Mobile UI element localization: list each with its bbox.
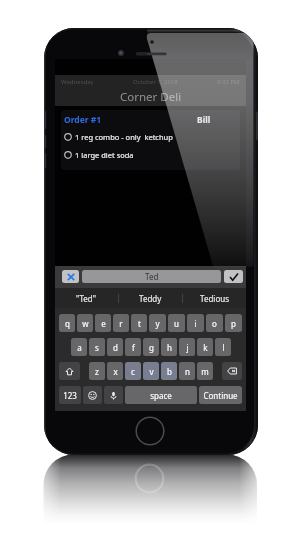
- staticText: q: [65, 318, 70, 329]
- staticText: c: [131, 366, 135, 377]
- button[interactable]: u: [168, 314, 185, 332]
- button[interactable]: c: [125, 362, 141, 380]
- staticText: t: [138, 318, 141, 329]
- staticText: "Ted": [76, 293, 97, 304]
- button[interactable]: 123: [59, 386, 81, 404]
- button[interactable]: p: [225, 314, 242, 332]
- staticText: o: [212, 318, 217, 329]
- staticText: 1 large diet soda: [75, 150, 134, 160]
- staticText: 123: [63, 390, 77, 401]
- button[interactable]: v: [143, 362, 159, 380]
- staticText: i: [194, 318, 197, 329]
- button[interactable]: l: [215, 338, 231, 356]
- button[interactable]: n: [179, 362, 195, 380]
- button[interactable]: f: [125, 338, 141, 356]
- staticText: 9:32 PM: [217, 78, 240, 86]
- button[interactable]: Continue: [199, 386, 242, 404]
- button[interactable]: b: [161, 362, 177, 380]
- staticText: Wednesday: [61, 78, 94, 86]
- staticText: Tedious: [200, 293, 229, 304]
- button[interactable]: e: [95, 314, 111, 332]
- button[interactable]: Voice input: [104, 386, 123, 404]
- button[interactable]: Bill: [197, 114, 211, 126]
- staticText: b: [167, 366, 172, 377]
- button[interactable]: Clear: [62, 270, 79, 283]
- button[interactable]: z: [89, 362, 105, 380]
- staticText: m: [201, 366, 209, 377]
- button[interactable]: g: [143, 338, 159, 356]
- staticText: y: [155, 318, 160, 329]
- button[interactable]: Confirm: [224, 270, 243, 283]
- staticText: n: [185, 366, 190, 377]
- button[interactable]: Tedious: [182, 288, 246, 309]
- button[interactable]: Shift: [59, 362, 80, 380]
- staticText: r: [119, 318, 123, 329]
- button[interactable]: q: [59, 314, 75, 332]
- button[interactable]: Emoji: [83, 386, 102, 404]
- staticText: p: [231, 318, 236, 329]
- staticText: k: [203, 342, 208, 353]
- button[interactable]: o: [206, 314, 223, 332]
- button[interactable]: m: [197, 362, 213, 380]
- staticText: e: [101, 318, 106, 329]
- button[interactable]: 1 reg combo - only ketchup: [64, 131, 240, 142]
- staticText: v: [149, 366, 154, 377]
- button[interactable]: x: [107, 362, 123, 380]
- button[interactable]: Ted: [82, 270, 221, 283]
- staticText: Corner Deli: [120, 89, 182, 105]
- staticText: Teddy: [139, 293, 162, 304]
- staticText: g: [149, 342, 154, 353]
- button[interactable]: Order #1: [64, 114, 102, 126]
- button[interactable]: w: [77, 314, 93, 332]
- button[interactable]: "Ted": [55, 288, 118, 309]
- button[interactable]: t: [131, 314, 147, 332]
- button[interactable]: a: [71, 338, 87, 356]
- staticText: Ted: [145, 271, 159, 282]
- staticText: 1 reg combo - only ketchup: [75, 132, 173, 142]
- staticText: w: [82, 318, 89, 329]
- button[interactable]: y: [149, 314, 166, 332]
- button[interactable]: i: [187, 314, 204, 332]
- staticText: October 7, 2018: [133, 78, 178, 86]
- staticText: d: [113, 342, 118, 353]
- button[interactable]: s: [89, 338, 105, 356]
- staticText: x: [113, 366, 118, 377]
- staticText: z: [95, 366, 99, 377]
- staticText: Continue: [203, 390, 238, 401]
- staticText: l: [222, 342, 225, 353]
- staticText: space: [150, 390, 172, 401]
- staticText: a: [77, 342, 82, 353]
- button[interactable]: 1 large diet soda: [64, 149, 240, 160]
- staticText: f: [132, 342, 135, 353]
- button[interactable]: k: [197, 338, 213, 356]
- staticText: s: [95, 342, 99, 353]
- button[interactable]: j: [179, 338, 195, 356]
- staticText: j: [186, 342, 189, 353]
- button[interactable]: r: [113, 314, 129, 332]
- button[interactable]: h: [161, 338, 177, 356]
- button[interactable]: Teddy: [118, 288, 182, 309]
- button[interactable]: Backspace: [222, 362, 242, 380]
- button[interactable]: d: [107, 338, 123, 356]
- staticText: h: [167, 342, 172, 353]
- button[interactable]: space: [125, 386, 197, 404]
- staticText: u: [174, 318, 179, 329]
